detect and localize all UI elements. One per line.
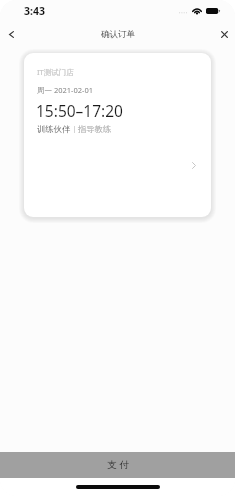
staticText: 3:43 <box>24 4 45 18</box>
staticText: 15:50–17:20 <box>36 100 123 121</box>
staticText: 训练伙伴 <box>37 124 71 134</box>
staticText: 指导教练 <box>78 124 112 134</box>
staticText: 周一 2021-02-01 <box>37 85 94 95</box>
button[interactable]: 支 付 <box>0 452 235 478</box>
staticText: 确认订单 <box>101 29 135 40</box>
button[interactable]: Close <box>215 25 233 43</box>
staticText: 支 付 <box>107 458 129 471</box>
button[interactable]: IT测试门店 <box>24 53 211 217</box>
button[interactable]: Back <box>2 25 20 43</box>
staticText: IT测试门店 <box>37 67 74 77</box>
